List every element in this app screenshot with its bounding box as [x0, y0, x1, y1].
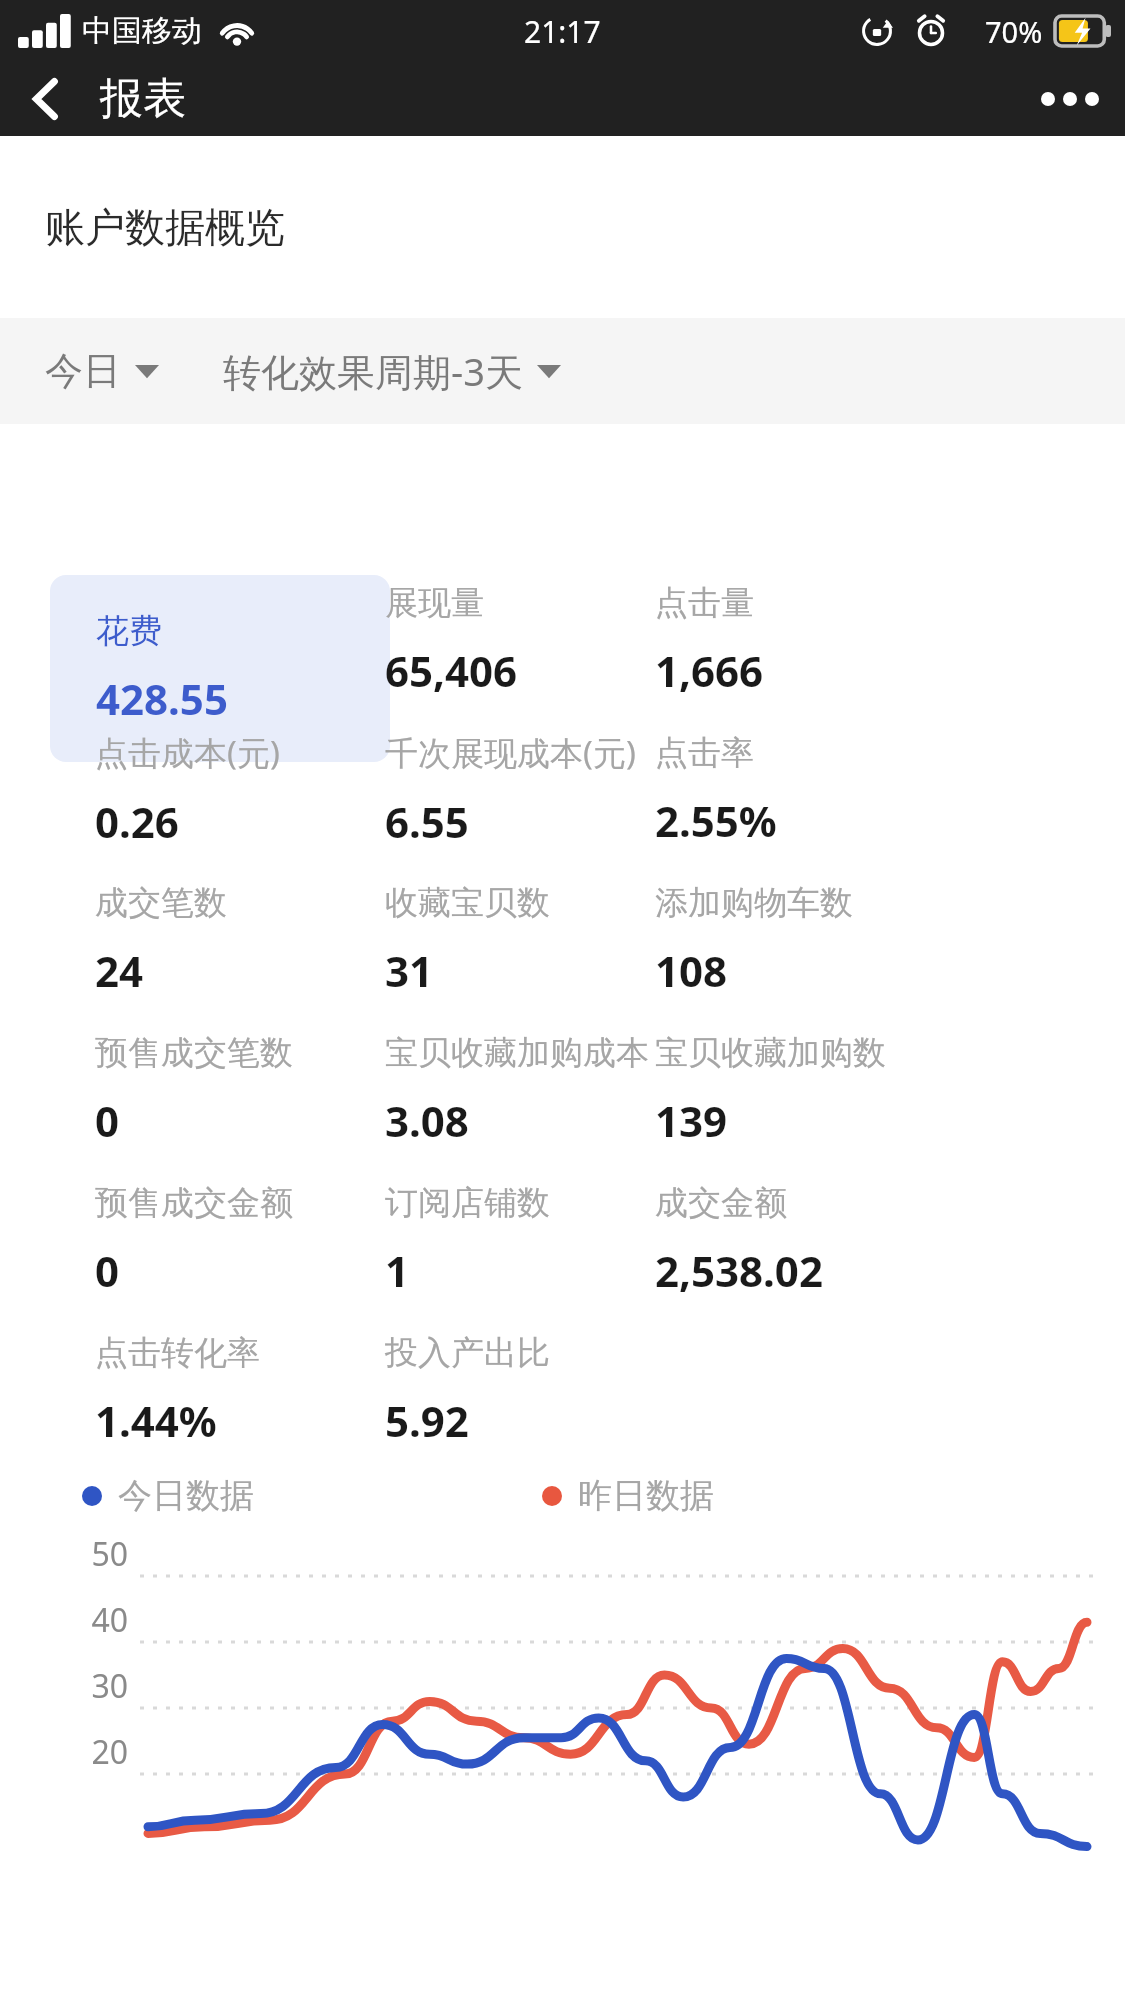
staticText: 24	[95, 942, 144, 999]
button[interactable]: 添加购物车数	[655, 875, 975, 1005]
button[interactable]: 昨日数据	[542, 1474, 714, 1517]
staticText: 108	[655, 942, 728, 999]
button[interactable]: 点击转化率	[95, 1325, 415, 1455]
staticText: 昨日数据	[578, 1474, 714, 1517]
button[interactable]: 花费	[50, 575, 390, 762]
button[interactable]: 投入产出比	[385, 1325, 705, 1455]
staticText: 订阅店铺数	[385, 1182, 550, 1224]
button[interactable]: 预售成交金额	[95, 1175, 415, 1305]
button[interactable]: 成交金额	[655, 1175, 975, 1305]
staticText: 点击成本(元)	[95, 730, 280, 775]
button[interactable]: 收藏宝贝数	[385, 875, 705, 1005]
staticText: 1.44%	[95, 1392, 217, 1449]
staticText: 139	[655, 1092, 728, 1149]
staticText: 千次展现成本(元)	[385, 730, 636, 775]
staticText: 今日	[45, 347, 121, 395]
button[interactable]: 今日	[45, 339, 159, 403]
button[interactable]: 转化效果周期-3天	[223, 337, 561, 405]
staticText: 成交金额	[655, 1182, 787, 1224]
button[interactable]: 宝贝收藏加购数	[655, 1025, 975, 1155]
staticText: 0	[95, 1092, 120, 1149]
button[interactable]: 点击率	[655, 725, 975, 855]
staticText: 点击转化率	[95, 1332, 260, 1374]
staticText: 1,666	[655, 642, 764, 699]
staticText: 21:17	[524, 11, 601, 52]
staticText: 5.92	[385, 1392, 469, 1449]
staticText: 花费	[96, 610, 162, 652]
button[interactable]: 展现量	[385, 575, 705, 705]
staticText: 中国移动	[82, 12, 202, 50]
staticText: 428.55	[96, 670, 228, 727]
staticText: 收藏宝贝数	[385, 882, 550, 924]
staticText: 投入产出比	[385, 1332, 550, 1374]
staticText: 40	[68, 1598, 128, 1642]
staticText: 宝贝收藏加购数	[655, 1032, 886, 1074]
staticText: 添加购物车数	[655, 882, 853, 924]
staticText: 预售成交金额	[95, 1182, 293, 1224]
staticText: 1	[385, 1242, 410, 1299]
button[interactable]: 成交笔数	[95, 875, 415, 1005]
staticText: 点击量	[655, 582, 754, 624]
staticText: 30	[68, 1664, 128, 1708]
button[interactable]: 预售成交笔数	[95, 1025, 415, 1155]
staticText: 今日数据	[118, 1474, 254, 1517]
staticText: 账户数据概览	[45, 202, 285, 252]
staticText: 31	[385, 942, 434, 999]
button[interactable]: More options	[1015, 62, 1125, 136]
staticText: 转化效果周期-3天	[223, 345, 523, 397]
staticText: 20	[68, 1730, 128, 1774]
button[interactable]: 千次展现成本(元)	[385, 725, 705, 855]
staticText: 65,406	[385, 642, 518, 699]
staticText: 3.08	[385, 1092, 469, 1149]
staticText: 点击率	[655, 732, 754, 774]
staticText: 6.55	[385, 793, 469, 850]
button[interactable]: 点击量	[655, 575, 975, 705]
staticText: 0	[95, 1242, 120, 1299]
staticText: 0.26	[95, 793, 179, 850]
staticText: 报表	[100, 72, 186, 126]
staticText: 2.55%	[655, 792, 777, 849]
staticText: 成交笔数	[95, 882, 227, 924]
staticText: 预售成交笔数	[95, 1032, 293, 1074]
button[interactable]: Back	[0, 62, 92, 136]
button[interactable]: 今日数据	[82, 1474, 254, 1517]
staticText: 2,538.02	[655, 1242, 823, 1299]
button[interactable]: 宝贝收藏加购成本	[385, 1025, 705, 1155]
staticText: 70%	[985, 12, 1043, 51]
staticText: 宝贝收藏加购成本	[385, 1032, 649, 1074]
button[interactable]: 点击成本(元)	[95, 725, 415, 855]
staticText: 展现量	[385, 582, 484, 624]
staticText: 50	[68, 1532, 128, 1576]
button[interactable]: 订阅店铺数	[385, 1175, 705, 1305]
